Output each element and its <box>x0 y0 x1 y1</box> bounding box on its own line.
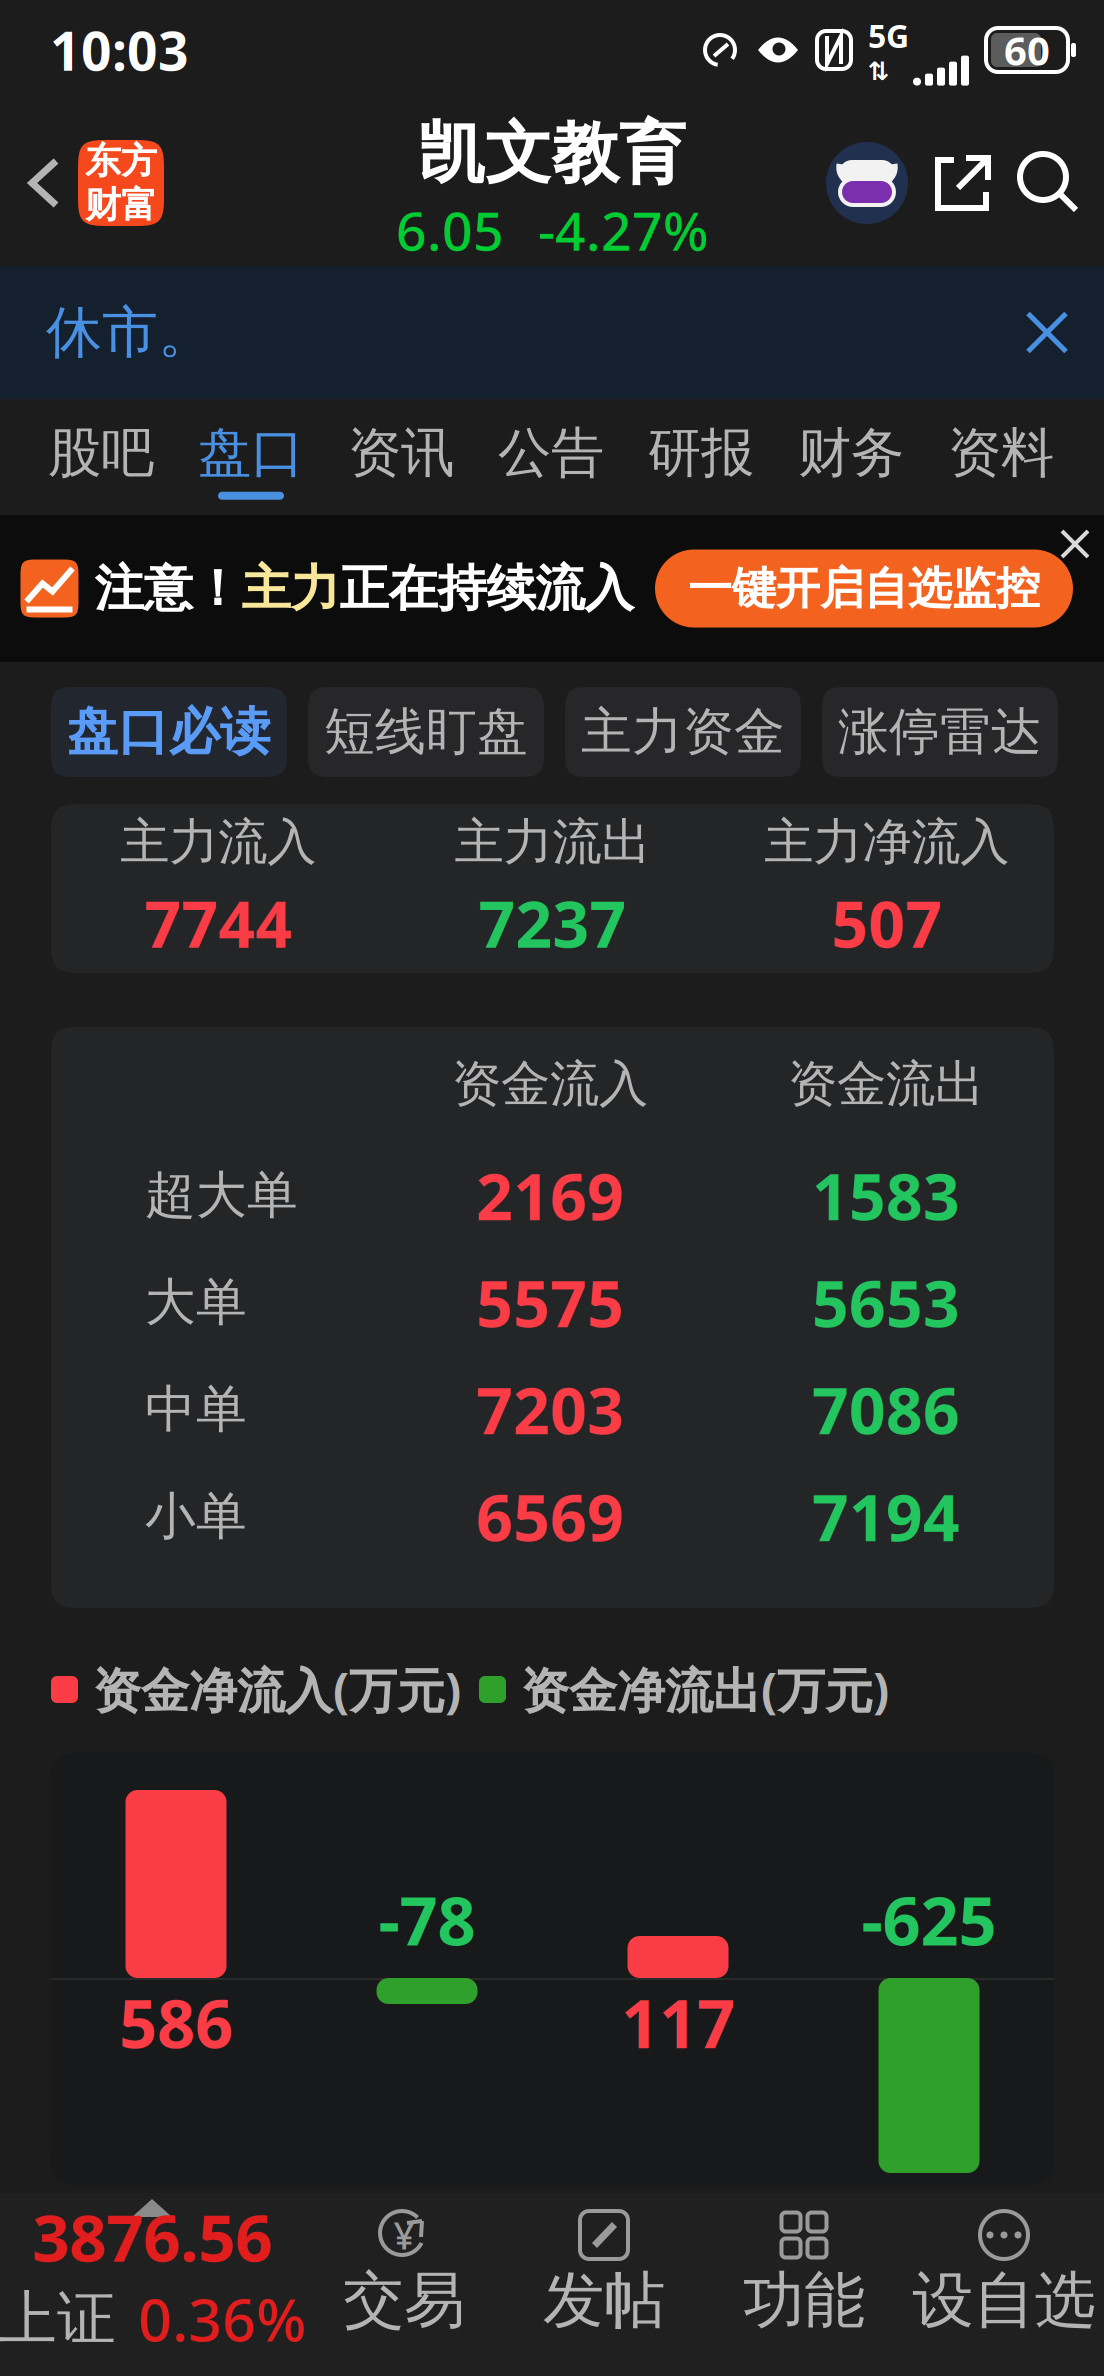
button[interactable]: 公告 <box>476 399 626 515</box>
button[interactable]: 短线盯盘 <box>308 687 544 777</box>
staticText: 小单 <box>145 1485 247 1548</box>
staticText: 发帖 <box>543 2263 665 2338</box>
button[interactable]: AI assistant <box>826 142 908 224</box>
staticText: 资金流入 <box>452 1054 648 1114</box>
staticText: 主力流入 <box>120 812 316 872</box>
button[interactable]: 盘口必读 <box>51 687 287 777</box>
staticText: -4.27% <box>538 194 708 265</box>
staticText: 盘口 <box>198 420 304 486</box>
staticText: 资金流出 <box>788 1054 984 1114</box>
button[interactable]: 功能 <box>704 2193 904 2376</box>
staticText: 1583 <box>812 1153 960 1238</box>
staticText: 586 <box>119 1978 233 2066</box>
staticText: 股吧 <box>48 420 154 486</box>
staticText: 0.36% <box>138 2280 306 2358</box>
staticText: 6.05 <box>396 194 504 265</box>
button[interactable]: 主力资金 <box>565 687 801 777</box>
staticText: 10:03 <box>50 15 189 85</box>
staticText: 资金净流入(万元) <box>93 1658 461 1721</box>
button[interactable]: Dismiss notice <box>1026 266 1104 399</box>
staticText: 5653 <box>812 1260 960 1345</box>
staticText: 凯文教育 <box>418 113 686 194</box>
button[interactable]: Close ad <box>1046 515 1104 573</box>
staticText: 财富 <box>85 183 157 227</box>
staticText: 财务 <box>798 420 904 486</box>
staticText: -78 <box>378 1875 475 1964</box>
staticText: 盘口必读 <box>67 701 271 763</box>
staticText: 资讯 <box>348 420 454 486</box>
button[interactable]: Back <box>0 100 174 266</box>
staticText: 一键开启自选监控 <box>688 561 1040 615</box>
button[interactable]: 资料 <box>926 399 1076 515</box>
button[interactable]: 盘口 <box>176 399 326 515</box>
staticText: 2169 <box>476 1153 624 1238</box>
staticText: 中单 <box>145 1378 247 1441</box>
staticText: 主力 <box>241 558 339 619</box>
staticText: -625 <box>861 1875 996 1964</box>
staticText: 短线盯盘 <box>324 701 528 763</box>
staticText: 资金净流出(万元) <box>521 1658 889 1721</box>
staticText: 东方 <box>85 139 157 183</box>
staticText: 大单 <box>145 1271 247 1334</box>
staticText: 上证 <box>0 2283 116 2355</box>
staticText: 60 <box>1004 23 1050 76</box>
staticText: 交易 <box>343 2263 465 2338</box>
staticText: ¥ <box>393 2210 414 2260</box>
staticText: 公告 <box>498 420 604 486</box>
staticText: 5G <box>868 14 909 57</box>
staticText: 7237 <box>478 880 626 965</box>
staticText: 休市。 <box>46 298 214 367</box>
staticText: ⇅ <box>868 57 889 86</box>
staticText: 507 <box>831 880 942 965</box>
staticText: 7744 <box>144 880 292 965</box>
button[interactable]: 研报 <box>626 399 776 515</box>
staticText: 7194 <box>812 1474 960 1559</box>
button[interactable]: Shanghai Composite index <box>0 2193 304 2376</box>
staticText: 7086 <box>812 1367 960 1452</box>
staticText: 功能 <box>743 2263 865 2338</box>
button[interactable]: 财务 <box>776 399 926 515</box>
staticText: 主力净流入 <box>764 812 1009 872</box>
button[interactable]: 涨停雷达 <box>822 687 1058 777</box>
staticText: 研报 <box>648 420 754 486</box>
staticText: 设自选 <box>912 2263 1095 2338</box>
staticText: 注意！ <box>94 558 241 619</box>
staticText: 3876.56 <box>32 2193 272 2280</box>
staticText: 主力资金 <box>581 701 785 763</box>
button[interactable]: 资讯 <box>326 399 476 515</box>
button[interactable]: 发帖 <box>504 2193 704 2376</box>
button[interactable]: Share <box>932 152 994 214</box>
staticText: 涨停雷达 <box>838 701 1042 763</box>
staticText: 5575 <box>476 1260 624 1345</box>
staticText: 117 <box>621 1978 735 2066</box>
staticText: 超大单 <box>145 1164 298 1227</box>
button[interactable]: Search <box>1018 152 1080 214</box>
button[interactable]: 一键开启自选监控 <box>655 549 1073 627</box>
button[interactable]: ¥ <box>304 2193 504 2376</box>
staticText: 6569 <box>476 1474 624 1559</box>
staticText: 主力流出 <box>454 812 650 872</box>
button[interactable]: 设自选 <box>904 2193 1104 2376</box>
staticText: 7203 <box>476 1367 624 1452</box>
button[interactable]: 股吧 <box>26 399 176 515</box>
staticText: 资料 <box>948 420 1054 486</box>
staticText: 正在持续流入 <box>339 558 633 619</box>
